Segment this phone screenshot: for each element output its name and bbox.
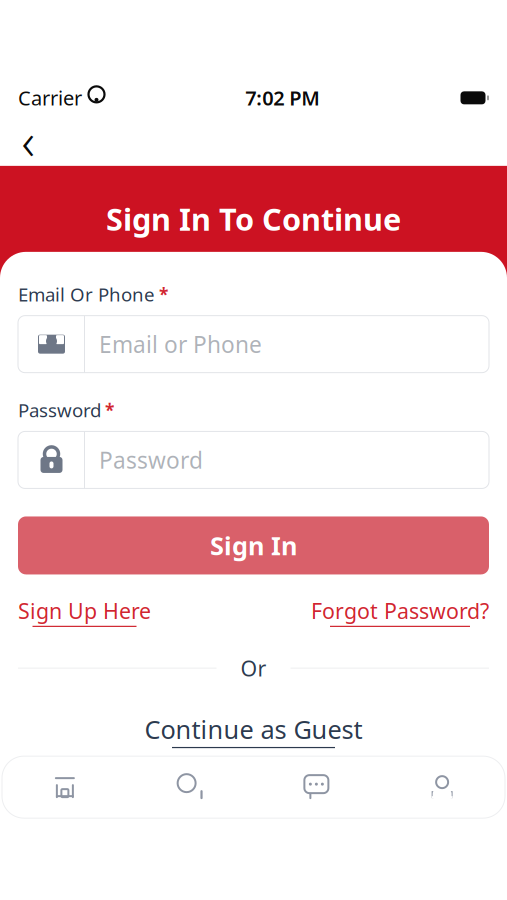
button[interactable]: Messages bbox=[253, 756, 379, 818]
button[interactable]: Back bbox=[6, 118, 50, 162]
button[interactable]: Search bbox=[128, 756, 254, 818]
staticText: * bbox=[105, 398, 114, 421]
button[interactable]: Password bbox=[18, 431, 489, 488]
staticText: Sign Up Here bbox=[18, 596, 151, 625]
button[interactable]: Sign In bbox=[18, 516, 489, 574]
staticText: Password bbox=[99, 445, 203, 475]
button[interactable]: Home bbox=[2, 756, 128, 818]
button[interactable]: Email or Phone bbox=[18, 316, 489, 373]
button[interactable]: Profile bbox=[379, 756, 505, 818]
staticText: Sign In To Continue bbox=[106, 198, 401, 239]
staticText: Forgot Password? bbox=[311, 596, 489, 625]
staticText: Email or Phone bbox=[99, 329, 262, 359]
staticText: Password bbox=[18, 398, 101, 422]
staticText: ‹ bbox=[21, 107, 34, 174]
button[interactable]: Sign Up Here bbox=[18, 596, 151, 627]
staticText: Carrier bbox=[18, 85, 82, 111]
staticText: * bbox=[159, 283, 168, 306]
button[interactable]: Forgot Password? bbox=[311, 596, 489, 627]
staticText: Sign In bbox=[210, 529, 297, 562]
staticText: 7:02 PM bbox=[245, 85, 320, 111]
button[interactable]: Continue as Guest bbox=[144, 712, 362, 748]
staticText: Email Or Phone bbox=[18, 282, 155, 307]
staticText: Or bbox=[240, 654, 266, 682]
staticText: Continue as Guest bbox=[144, 712, 362, 746]
